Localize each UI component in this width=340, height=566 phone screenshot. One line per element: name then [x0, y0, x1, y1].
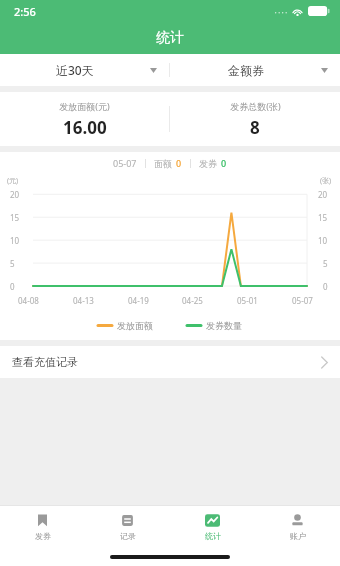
button[interactable]: 发券: [0, 506, 85, 548]
staticText: (元): [7, 176, 19, 186]
staticText: 金额券: [228, 63, 264, 78]
staticText: 发券: [199, 158, 217, 169]
button[interactable]: 近30天: [0, 54, 169, 86]
button[interactable]: 金额券: [170, 54, 340, 86]
staticText: 20: [10, 189, 20, 200]
staticText: 发放面额(元): [59, 100, 110, 112]
staticText: 20: [318, 189, 328, 200]
staticText: 05-07: [292, 295, 313, 306]
staticText: 10: [10, 235, 20, 246]
staticText: 发券总数(张): [230, 100, 281, 112]
staticText: 04-08: [18, 295, 39, 306]
button[interactable]: 账户: [255, 506, 340, 548]
staticText: 5: [10, 258, 15, 269]
staticText: 5: [323, 258, 328, 269]
staticText: 10: [318, 235, 328, 246]
staticText: (张): [320, 176, 332, 186]
staticText: 查看充值记录: [12, 355, 78, 369]
staticText: 04-25: [182, 295, 203, 306]
staticText: 15: [318, 212, 328, 223]
staticText: 05-07: [113, 157, 137, 169]
staticText: 05-01: [237, 295, 258, 306]
button[interactable]: 记录: [85, 506, 170, 548]
staticText: 统计: [156, 29, 184, 47]
staticText: 记录: [120, 531, 136, 541]
staticText: 发券: [35, 531, 51, 541]
staticText: 16.00: [63, 116, 107, 139]
staticText: 统计: [205, 531, 221, 541]
staticText: 04-13: [73, 295, 94, 306]
staticText: 发放面额: [117, 320, 153, 331]
button[interactable]: 统计: [170, 506, 255, 548]
staticText: 8: [250, 116, 260, 139]
staticText: 04-19: [128, 295, 149, 306]
staticText: 2:56: [14, 4, 36, 19]
button[interactable]: 查看充值记录: [0, 346, 340, 378]
staticText: 0: [10, 281, 15, 292]
staticText: 近30天: [56, 62, 94, 78]
staticText: 0: [176, 157, 182, 169]
staticText: 账户: [290, 531, 306, 541]
staticText: 0: [323, 281, 328, 292]
staticText: 0: [221, 157, 227, 169]
staticText: 15: [10, 212, 20, 223]
staticText: 面额: [154, 158, 172, 169]
staticText: 发券数量: [206, 320, 242, 331]
